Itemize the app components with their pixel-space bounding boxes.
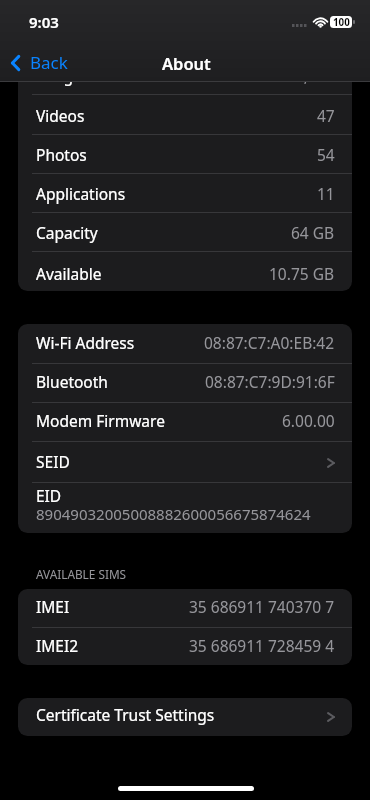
- staticText: 100: [333, 16, 350, 28]
- button[interactable]: Capacity: [18, 213, 352, 252]
- button[interactable]: Wi-Fi Address: [18, 324, 352, 364]
- staticText: AVAILABLE SIMS: [36, 566, 127, 582]
- button[interactable]: IMEI2: [18, 628, 352, 665]
- staticText: Capacity: [36, 222, 98, 243]
- staticText: 47: [317, 105, 335, 126]
- staticText: 1,248: [295, 65, 335, 86]
- staticText: EID: [36, 485, 62, 506]
- button[interactable]: Applications: [18, 174, 352, 213]
- button[interactable]: Available: [18, 252, 352, 290]
- staticText: IMEI2: [36, 635, 79, 656]
- staticText: Certificate Trust Settings: [36, 704, 215, 725]
- staticText: Songs: [36, 65, 81, 86]
- staticText: Available: [36, 263, 102, 284]
- staticText: Modem Firmware: [36, 410, 165, 431]
- staticText: Back: [30, 51, 68, 74]
- staticText: IMEI: [36, 596, 70, 617]
- button[interactable]: Back: [0, 51, 76, 74]
- staticText: 9:03: [29, 12, 59, 32]
- other: Wi-Fi: [314, 17, 327, 28]
- staticText: 6.00.00: [282, 410, 335, 431]
- staticText: 35 686911 740370 7: [189, 596, 335, 617]
- button[interactable]: Songs: [18, 56, 352, 95]
- button[interactable]: IMEI: [18, 589, 352, 628]
- staticText: Videos: [36, 105, 85, 126]
- staticText: Applications: [36, 183, 126, 204]
- button[interactable]: Certificate Trust Settings: [18, 698, 352, 736]
- staticText: 35 686911 728459 4: [189, 635, 335, 656]
- button[interactable]: Modem Firmware: [18, 403, 352, 442]
- staticText: 08:87:C7:A0:EB:42: [204, 332, 335, 353]
- button[interactable]: Bluetooth: [18, 364, 352, 403]
- other: Cellular signal: [292, 24, 307, 27]
- button[interactable]: Photos: [18, 135, 352, 174]
- staticText: 11: [317, 183, 335, 204]
- staticText: SEID: [36, 451, 70, 472]
- staticText: Wi-Fi Address: [36, 332, 135, 353]
- staticText: 89049032005008882600056675874624: [36, 504, 311, 524]
- staticText: 64 GB: [291, 222, 335, 243]
- staticText: 54: [317, 144, 335, 165]
- staticText: 08:87:C7:9D:91:6F: [205, 371, 335, 392]
- other: Battery 100 percent: [330, 16, 352, 28]
- button[interactable]: Videos: [18, 96, 352, 135]
- button[interactable]: SEID: [18, 443, 352, 483]
- button[interactable]: EID: [18, 482, 352, 533]
- staticText: 10.75 GB: [269, 263, 335, 284]
- staticText: About: [162, 52, 211, 74]
- staticText: Bluetooth: [36, 371, 108, 392]
- staticText: Photos: [36, 144, 87, 165]
